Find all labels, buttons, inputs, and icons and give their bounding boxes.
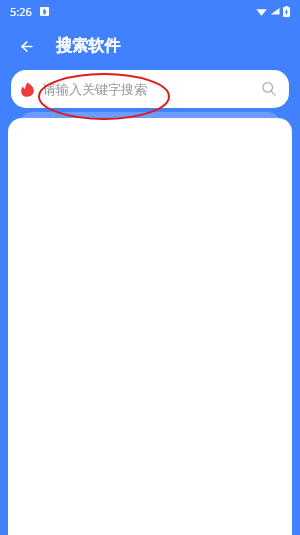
- staticText: 搜索软件: [56, 36, 120, 56]
- button[interactable]: 请输入关键字搜索: [11, 70, 289, 108]
- staticText: 5:26: [10, 4, 32, 19]
- button[interactable]: Back: [12, 31, 42, 61]
- button[interactable]: Search: [259, 79, 279, 99]
- staticText: 请输入关键字搜索: [43, 81, 147, 97]
